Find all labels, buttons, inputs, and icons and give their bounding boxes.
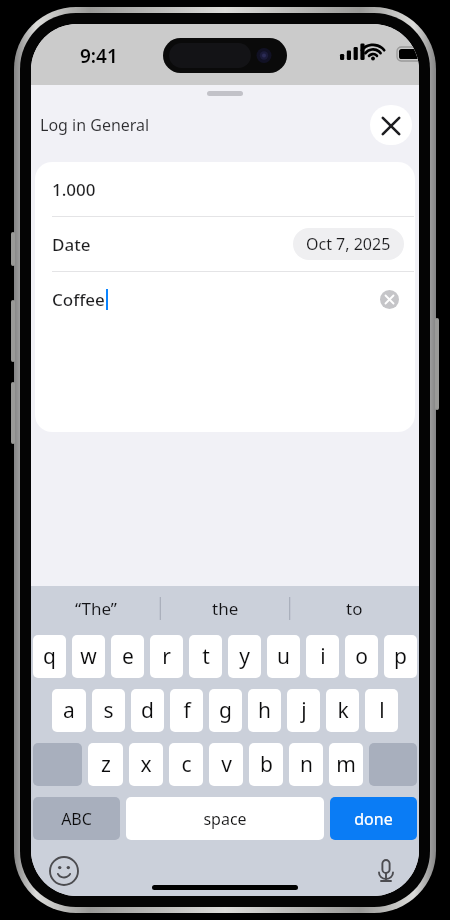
button[interactable]: Backspace <box>369 743 417 786</box>
button[interactable]: j <box>287 689 320 732</box>
staticText: p <box>394 642 407 671</box>
staticText: b <box>260 750 273 779</box>
button[interactable]: Emoji keyboard <box>47 854 81 888</box>
button[interactable]: Shift <box>33 743 82 786</box>
button[interactable]: Date <box>35 217 415 271</box>
staticText: n <box>300 750 313 779</box>
button[interactable]: l <box>365 689 398 732</box>
button[interactable]: v <box>209 743 243 786</box>
button[interactable]: f <box>170 689 203 732</box>
button[interactable]: s <box>92 689 125 732</box>
staticText: 1.000 <box>52 178 96 201</box>
button[interactable]: “The” <box>31 586 161 631</box>
button[interactable]: Oct 7, 2025 <box>293 228 404 260</box>
staticText: i <box>320 642 326 671</box>
button[interactable]: k <box>326 689 359 732</box>
staticText: l <box>379 696 385 725</box>
button[interactable]: n <box>289 743 323 786</box>
button[interactable]: m <box>329 743 363 786</box>
button[interactable]: the <box>161 586 290 631</box>
staticText: to <box>346 597 363 620</box>
button[interactable]: x <box>129 743 163 786</box>
button[interactable]: space <box>126 797 324 840</box>
button[interactable]: z <box>88 743 123 786</box>
staticText: 9:41 <box>80 43 118 69</box>
button[interactable]: t <box>189 635 222 678</box>
button[interactable]: 1.000 <box>35 162 415 216</box>
staticText: “The” <box>75 597 117 620</box>
staticText: s <box>103 696 114 725</box>
staticText: q <box>43 642 56 671</box>
staticText: space <box>203 808 247 830</box>
button[interactable]: ABC <box>33 797 120 840</box>
staticText: y <box>239 642 250 671</box>
button[interactable]: p <box>384 635 417 678</box>
staticText: c <box>181 750 192 779</box>
staticText: o <box>355 642 368 671</box>
button[interactable]: Clear text <box>380 290 399 309</box>
staticText: Oct 7, 2025 <box>306 233 391 255</box>
button[interactable]: a <box>52 689 86 732</box>
staticText: Coffee <box>52 288 105 311</box>
staticText: j <box>301 696 307 725</box>
button[interactable]: c <box>169 743 203 786</box>
staticText: h <box>258 696 271 725</box>
staticText: d <box>141 696 154 725</box>
staticText: v <box>221 750 232 779</box>
staticText: Date <box>52 233 91 256</box>
button[interactable]: h <box>248 689 281 732</box>
staticText: x <box>140 750 152 779</box>
staticText: ABC <box>61 808 92 830</box>
staticText: k <box>337 696 349 725</box>
button[interactable]: d <box>131 689 164 732</box>
staticText: e <box>122 642 134 671</box>
button[interactable]: Coffee <box>35 272 415 326</box>
button[interactable]: done <box>330 797 417 840</box>
button[interactable]: b <box>249 743 283 786</box>
staticText: f <box>183 696 191 725</box>
button[interactable]: Close <box>370 105 412 145</box>
button[interactable]: q <box>33 635 66 678</box>
button[interactable]: e <box>111 635 144 678</box>
staticText: m <box>336 750 356 779</box>
button[interactable]: o <box>345 635 378 678</box>
button[interactable]: Dictation <box>369 854 403 888</box>
staticText: the <box>212 597 239 620</box>
button[interactable]: u <box>267 635 300 678</box>
button[interactable]: y <box>228 635 261 678</box>
staticText: r <box>162 642 171 671</box>
button[interactable]: g <box>209 689 242 732</box>
staticText: done <box>354 808 393 830</box>
button[interactable]: w <box>72 635 105 678</box>
button[interactable]: r <box>150 635 183 678</box>
button[interactable]: i <box>306 635 339 678</box>
staticText: a <box>63 696 75 725</box>
staticText: w <box>80 642 97 671</box>
staticText: u <box>277 642 290 671</box>
staticText: t <box>202 642 210 671</box>
staticText: z <box>101 750 111 779</box>
staticText: g <box>219 696 232 725</box>
button[interactable]: to <box>290 586 419 631</box>
staticText: Log in General <box>40 114 150 136</box>
